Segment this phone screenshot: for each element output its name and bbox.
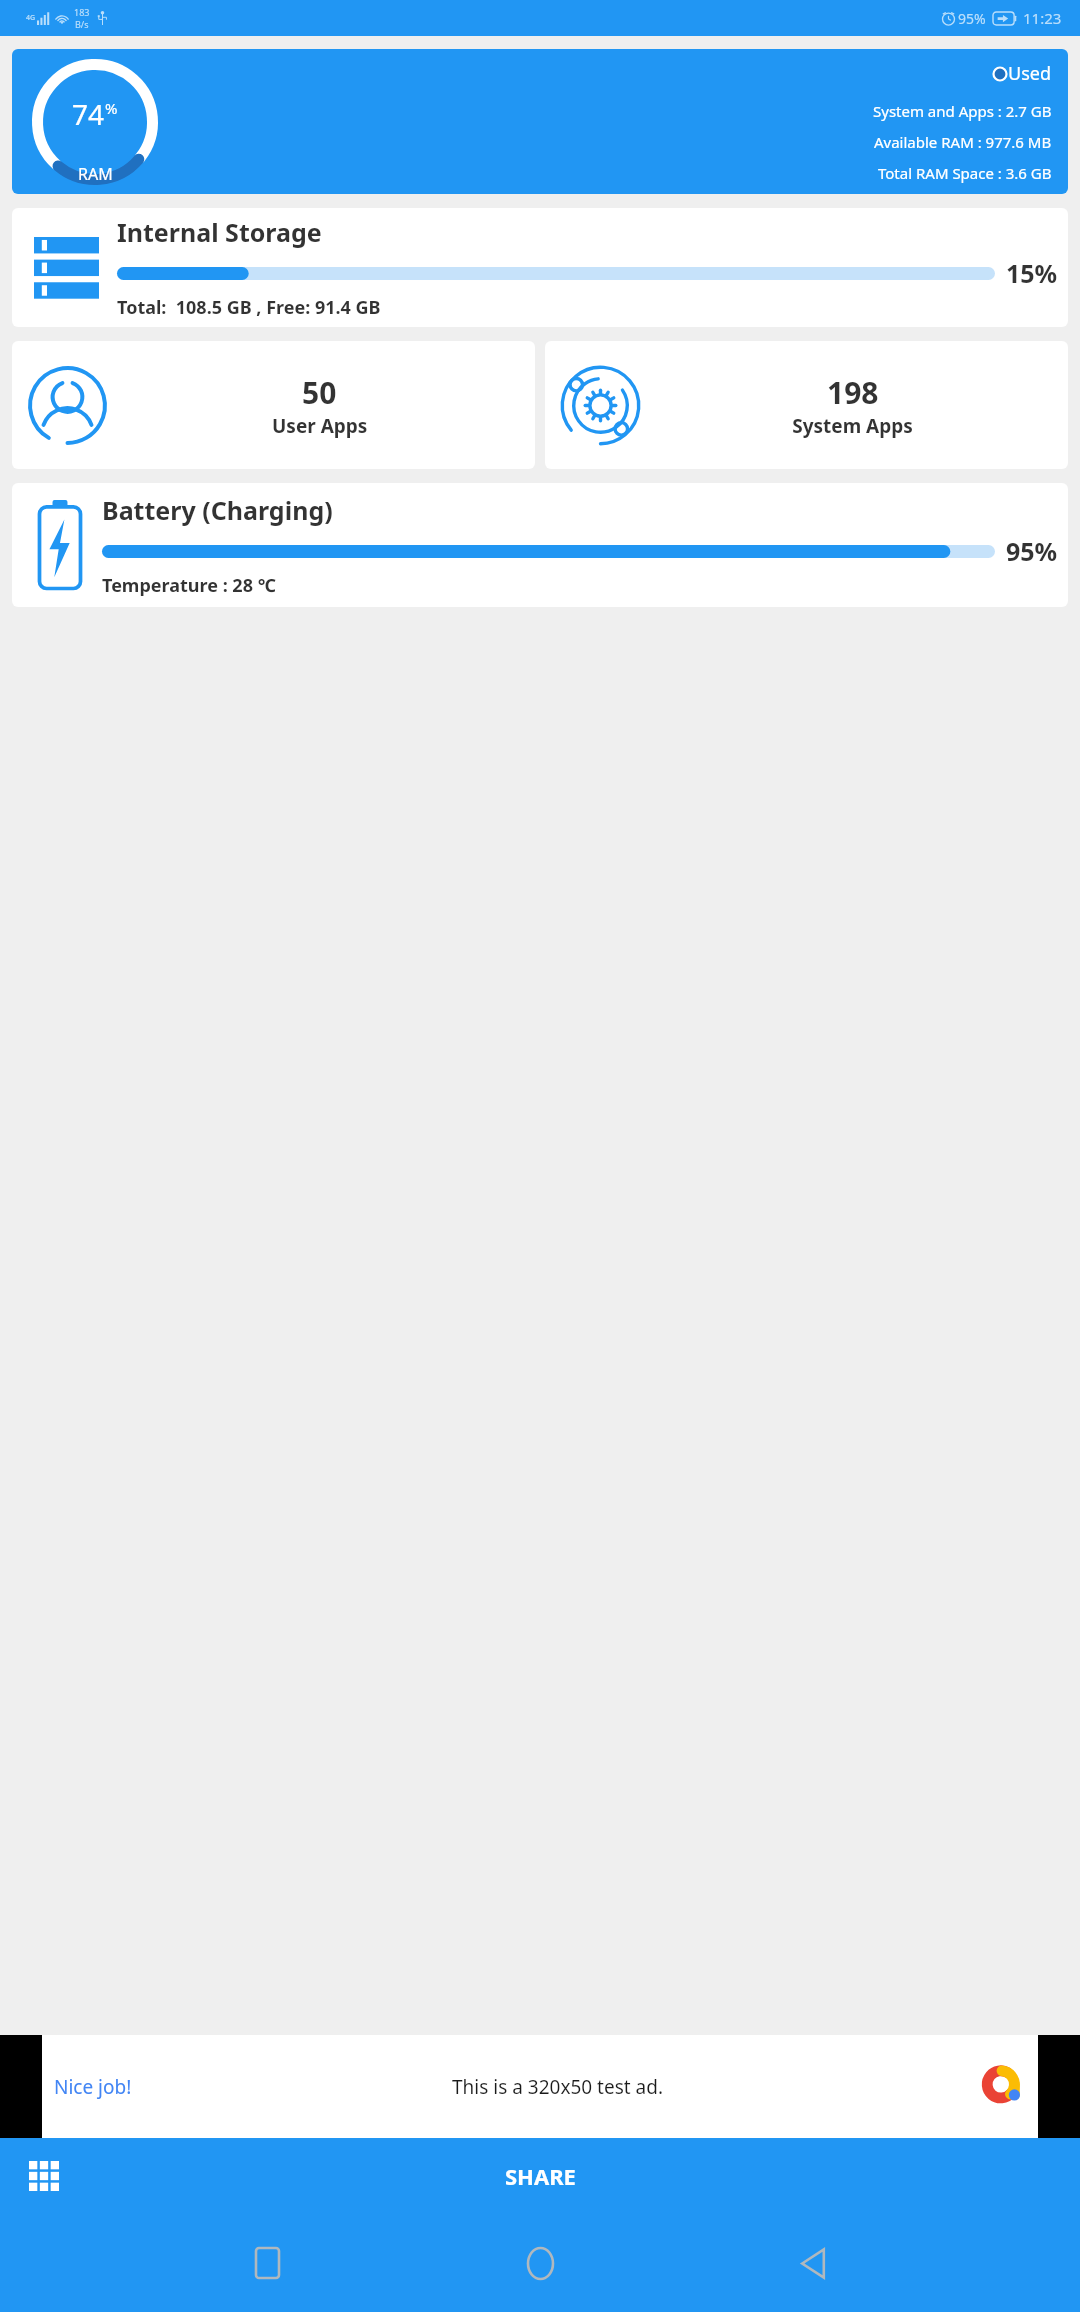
staticText: Used [1008, 61, 1052, 86]
staticText: Battery (Charging) [102, 493, 333, 527]
staticText: This is a 320x50 test ad. [452, 2074, 664, 2100]
staticText: Internal Storage [117, 215, 322, 249]
button[interactable]: Battery (Charging) [12, 483, 1068, 607]
staticText: Nice job! [54, 2074, 132, 2100]
button[interactable]: Internal Storage [12, 208, 1068, 327]
staticText: Temperature : 28 ℃ [102, 573, 276, 598]
button[interactable]: SHARE [465, 2149, 616, 2203]
staticText: System and Apps : 2.7 GB [873, 101, 1052, 121]
button[interactable]: Nice job! [0, 2035, 1080, 2138]
staticText: 50 [302, 372, 337, 413]
button[interactable]: Recents [240, 2236, 294, 2290]
staticText: 4G [26, 13, 36, 23]
staticText: RAM [78, 163, 113, 185]
staticText: 74 [72, 95, 105, 133]
button[interactable]: 50 [12, 341, 535, 469]
staticText: 11:23 [1023, 8, 1062, 28]
staticText: 15% [1006, 256, 1058, 290]
button[interactable]: Apps grid [16, 2148, 72, 2204]
staticText: 198 [827, 372, 879, 413]
staticText: SHARE [505, 2161, 576, 2191]
staticText: Total: 108.5 GB , Free: 91.4 GB [117, 295, 381, 320]
button[interactable]: 198 [545, 341, 1068, 469]
button[interactable]: 74 [12, 49, 1068, 194]
staticText: System Apps [792, 413, 913, 439]
staticText: B/s [75, 18, 89, 30]
staticText: 95% [1006, 534, 1058, 568]
staticText: % [105, 98, 118, 118]
staticText: 183 [74, 6, 90, 18]
button[interactable]: Back [786, 2236, 840, 2290]
button[interactable]: Home [513, 2236, 567, 2290]
staticText: Available RAM : 977.6 MB [874, 132, 1052, 152]
staticText: User Apps [272, 413, 368, 439]
staticText: 95% [958, 9, 986, 28]
staticText: Total RAM Space : 3.6 GB [878, 163, 1052, 183]
